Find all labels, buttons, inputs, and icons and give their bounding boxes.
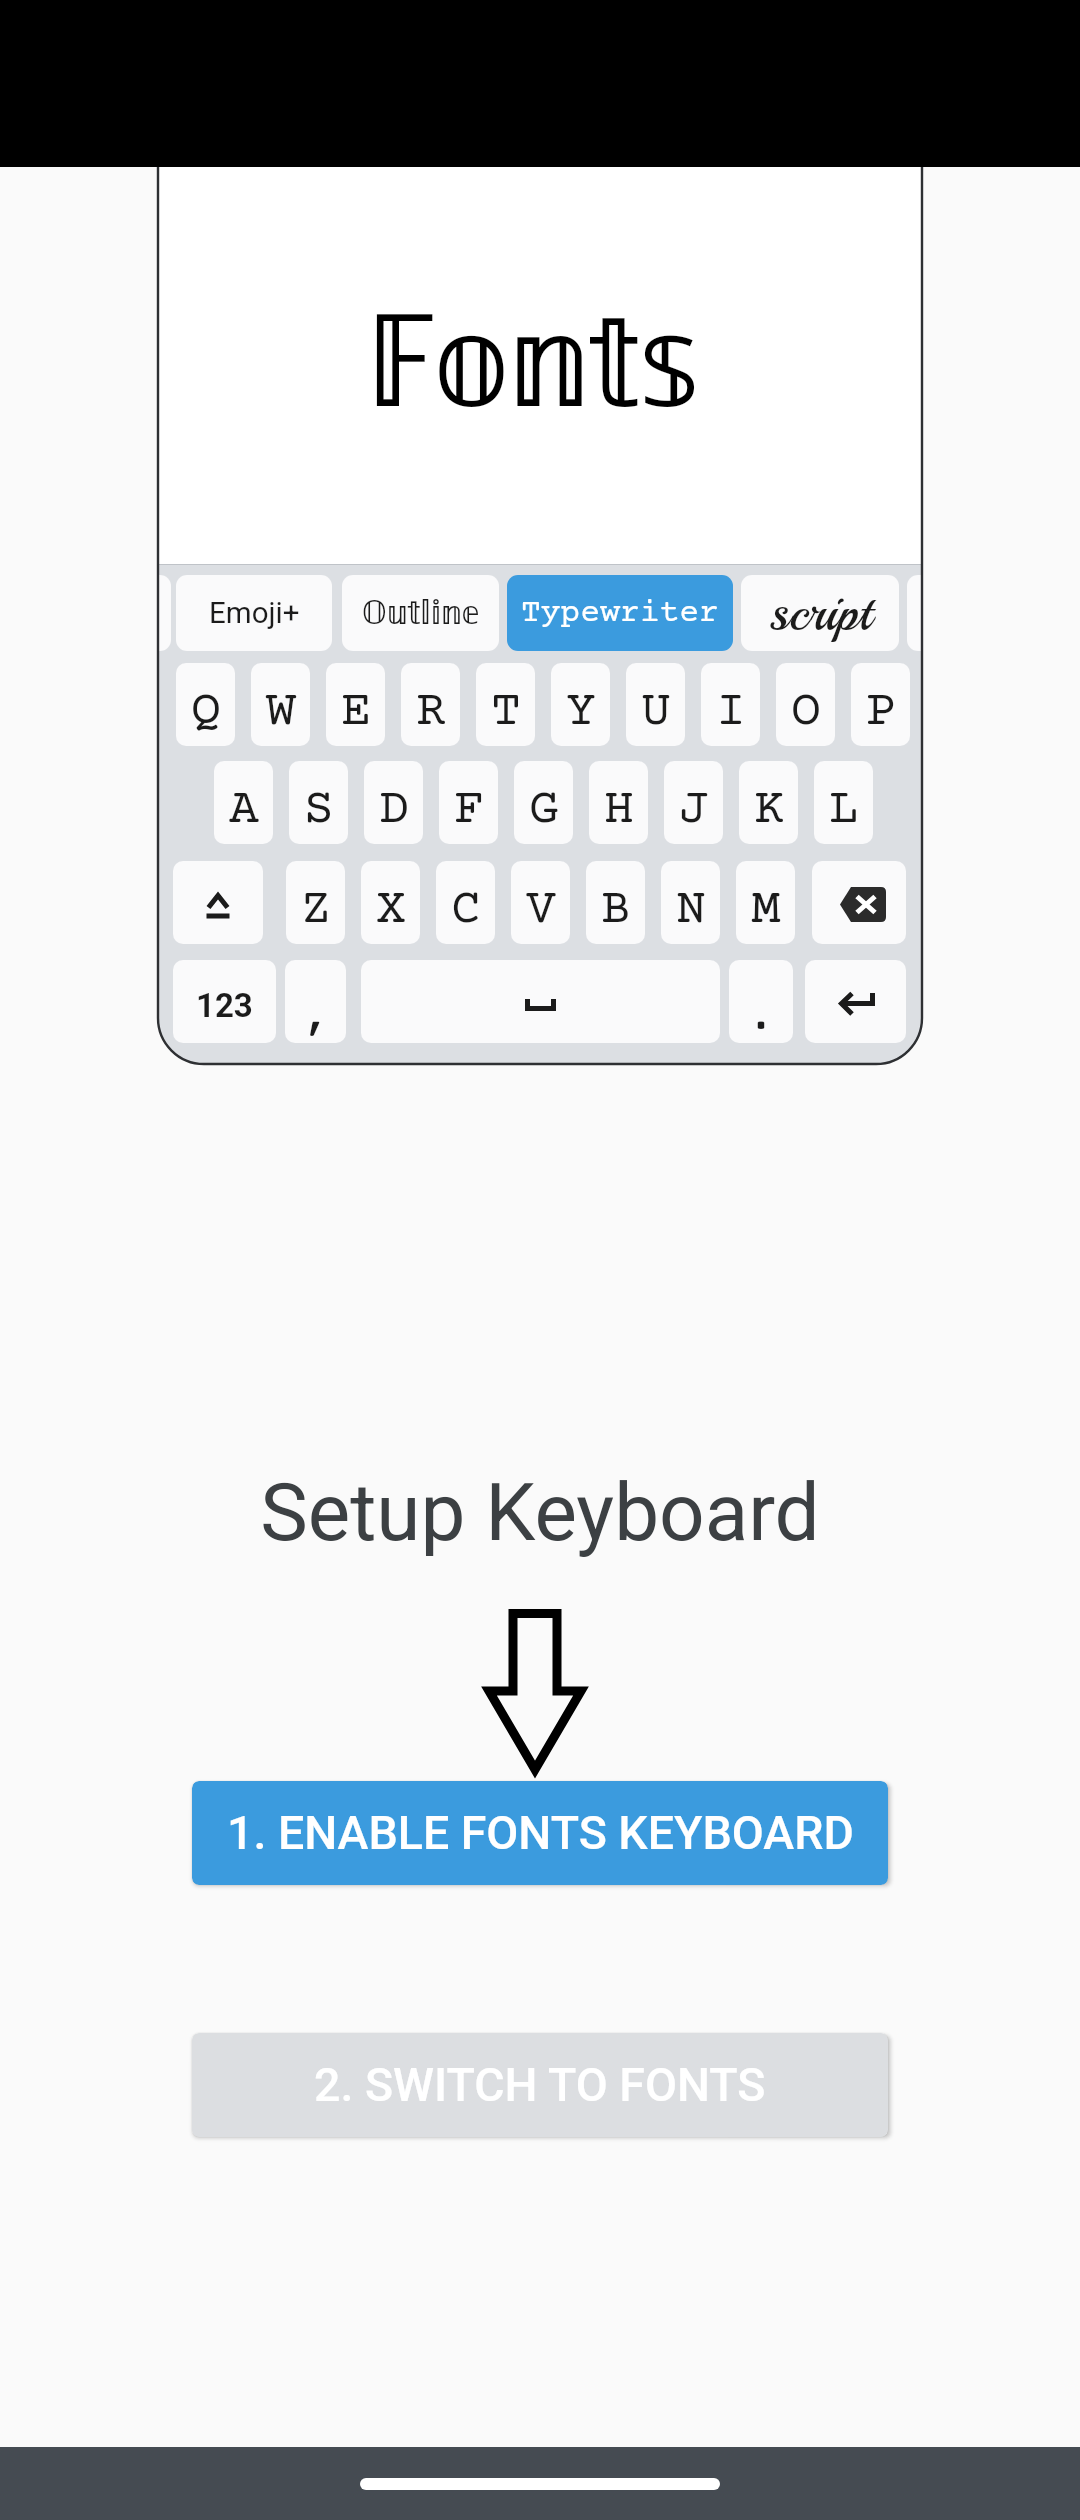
staticText: U: [641, 685, 671, 741]
staticText: W: [266, 685, 296, 741]
staticText: Z: [301, 883, 331, 939]
staticText: Setup Keyboard: [0, 1466, 1080, 1560]
button[interactable]: Enter: [805, 960, 906, 1043]
staticText: Emoji+: [209, 596, 300, 631]
button[interactable]: 2. SWITCH TO FONTS: [192, 2033, 888, 2137]
button[interactable]: 1. ENABLE FONTS KEYBOARD: [192, 1781, 888, 1885]
button[interactable]: X: [361, 861, 420, 944]
button[interactable]: .: [729, 960, 793, 1043]
button[interactable]: L: [814, 761, 873, 844]
staticText: Q: [191, 685, 221, 741]
staticText: X: [376, 883, 406, 939]
staticText: E: [341, 685, 371, 741]
button[interactable]: Q: [176, 663, 235, 746]
staticText: I: [716, 685, 746, 741]
staticText: .: [746, 990, 776, 1043]
staticText: ,: [301, 990, 331, 1043]
button[interactable]: M: [736, 861, 795, 944]
staticText: R: [416, 685, 446, 741]
button[interactable]: R: [401, 663, 460, 746]
button[interactable]: P: [851, 663, 910, 746]
button[interactable]: I: [701, 663, 760, 746]
staticText: Typewriter: [521, 595, 719, 632]
staticText: N: [676, 883, 706, 939]
button[interactable]: K: [739, 761, 798, 844]
button[interactable]: Z: [286, 861, 345, 944]
button[interactable]: G: [514, 761, 573, 844]
staticText: F: [454, 783, 484, 839]
staticText: V: [526, 883, 556, 939]
staticText: G: [529, 783, 559, 839]
staticText: 𝕆𝕦𝕥𝕝𝕚𝕟𝕖: [362, 589, 480, 637]
staticText: K: [754, 783, 784, 839]
button[interactable]: C: [436, 861, 495, 944]
staticText: H: [604, 783, 634, 839]
button[interactable]: A: [214, 761, 273, 844]
button[interactable]: J: [664, 761, 723, 844]
staticText: S: [304, 783, 334, 839]
button[interactable]: E: [326, 663, 385, 746]
button[interactable]: Shift: [173, 861, 263, 944]
staticText: 𝔽𝕠𝕟𝕥𝕤: [367, 269, 702, 460]
button[interactable]: S: [289, 761, 348, 844]
staticText: P: [866, 685, 896, 741]
button[interactable]: Space: [361, 960, 720, 1043]
staticText: 123: [196, 986, 253, 1025]
button[interactable]: V: [511, 861, 570, 944]
staticText: C: [451, 883, 481, 939]
button[interactable]: W: [251, 663, 310, 746]
button[interactable]: 123: [173, 960, 276, 1043]
button[interactable]: script: [741, 575, 899, 651]
button[interactable]: B: [586, 861, 645, 944]
staticText: A: [229, 783, 259, 839]
button[interactable]: T: [476, 663, 535, 746]
button[interactable]: 𝕆𝕦𝕥𝕝𝕚𝕟𝕖: [342, 575, 499, 651]
button[interactable]: H: [589, 761, 648, 844]
staticText: B: [601, 883, 631, 939]
button[interactable]: U: [626, 663, 685, 746]
button[interactable]: ,: [285, 960, 346, 1043]
staticText: L: [829, 783, 859, 839]
staticText: D: [379, 783, 409, 839]
button[interactable]: [158, 575, 171, 651]
button[interactable]: Y: [551, 663, 610, 746]
staticText: script: [769, 580, 872, 646]
staticText: T: [491, 685, 521, 741]
staticText: O: [791, 685, 821, 741]
staticText: M: [751, 883, 781, 939]
button[interactable]: Typewriter: [507, 575, 733, 651]
staticText: 2. SWITCH TO FONTS: [314, 2058, 766, 2112]
staticText: J: [679, 783, 709, 839]
button[interactable]: F: [439, 761, 498, 844]
button[interactable]: [907, 575, 922, 651]
button[interactable]: Emoji+: [176, 575, 332, 651]
button[interactable]: Backspace: [812, 861, 906, 944]
staticText: 1. ENABLE FONTS KEYBOARD: [227, 1806, 854, 1860]
button[interactable]: D: [364, 761, 423, 844]
button[interactable]: N: [661, 861, 720, 944]
button[interactable]: O: [776, 663, 835, 746]
staticText: Y: [566, 685, 596, 741]
